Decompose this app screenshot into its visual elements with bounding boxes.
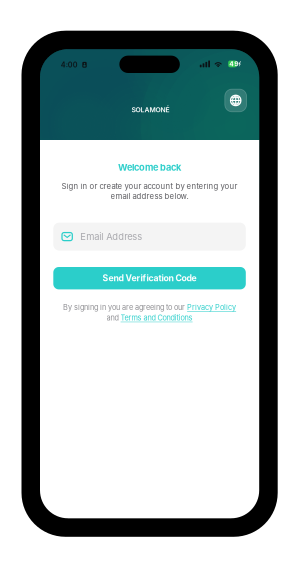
button[interactable]: Language	[225, 89, 247, 112]
staticText: email address below.	[111, 191, 189, 201]
button[interactable]: Terms and Conditions	[121, 313, 193, 322]
staticText: Terms and Conditions	[121, 313, 193, 322]
staticText: and	[107, 313, 121, 322]
button[interactable]: Send Verification Code	[53, 267, 246, 289]
staticText: Privacy Policy	[187, 303, 236, 312]
button[interactable]: Privacy Policy	[187, 303, 236, 312]
staticText: Email Address	[80, 231, 142, 242]
staticText: 49	[229, 60, 238, 68]
staticText: Welcome back	[118, 162, 181, 173]
staticText: By signing in you are agreeing to our	[63, 303, 187, 312]
staticText: SOLAMONÉ	[132, 106, 170, 114]
staticText: Send Verification Code	[102, 273, 196, 283]
staticText: Sign in or create your account by enteri…	[62, 181, 238, 191]
staticText: 4:00	[61, 60, 78, 69]
